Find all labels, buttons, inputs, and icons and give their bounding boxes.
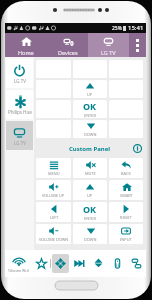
staticText: VOLUME DOWN xyxy=(39,237,69,242)
button[interactable]: Playback xyxy=(70,250,89,277)
staticText: Telecom Wi-fi xyxy=(8,268,30,273)
staticText: VOLUME UP xyxy=(42,193,65,198)
staticText: SMART xyxy=(120,193,133,198)
button[interactable]: Favourites xyxy=(32,250,50,277)
button[interactable]: LG TV xyxy=(6,59,33,88)
staticText: MENU xyxy=(48,171,60,176)
button[interactable]: MUTE xyxy=(73,158,107,178)
button[interactable]: UP xyxy=(73,80,107,98)
staticText: BACK xyxy=(121,171,131,176)
button[interactable]: Channel xyxy=(89,250,108,277)
staticText: Home xyxy=(18,49,34,56)
button[interactable]: LG TV xyxy=(6,121,33,150)
staticText: OK xyxy=(83,100,97,112)
staticText: Philips Hue xyxy=(8,109,32,115)
button[interactable]: OK xyxy=(73,100,107,118)
staticText: RIGHT xyxy=(120,215,132,220)
button[interactable]: UP xyxy=(73,180,107,200)
button[interactable]: LG TV xyxy=(88,33,129,57)
staticText: ENTER xyxy=(84,113,96,118)
staticText: 25% xyxy=(112,25,122,32)
staticText: DOWN xyxy=(84,237,97,242)
button[interactable]: SMART xyxy=(109,180,143,200)
staticText: LEFT xyxy=(50,215,59,220)
button[interactable]: Home xyxy=(5,33,47,57)
button[interactable]: LEFT xyxy=(36,202,71,222)
button[interactable]: Remote xyxy=(108,250,127,277)
staticText: UP xyxy=(87,92,93,97)
staticText: DOWN xyxy=(84,132,97,137)
button[interactable]: OK xyxy=(73,202,107,222)
staticText: MUTE xyxy=(85,171,96,176)
button[interactable]: Connect xyxy=(127,250,146,277)
staticText: Devices xyxy=(58,49,78,56)
button[interactable]: Telecom Wi-fi xyxy=(5,250,32,277)
staticText: OK xyxy=(83,203,97,215)
button[interactable]: VOLUME DOWN xyxy=(36,224,71,244)
staticText: LG TV xyxy=(14,78,26,84)
staticText: Custom Panel xyxy=(69,145,111,153)
staticText: LG TV xyxy=(14,140,26,146)
button[interactable]: Philips Hue xyxy=(6,90,33,119)
button[interactable]: Info xyxy=(131,142,143,154)
button[interactable]: Devices xyxy=(47,33,88,57)
staticText: LG TV xyxy=(101,49,116,56)
button[interactable]: MENU xyxy=(36,158,71,178)
button[interactable]: DOWN xyxy=(73,120,107,138)
button[interactable]: More options xyxy=(129,33,146,57)
button[interactable]: BACK xyxy=(109,158,143,178)
staticText: 15:41 xyxy=(128,24,144,32)
staticText: ENTER xyxy=(84,216,96,221)
button[interactable]: DOWN xyxy=(73,224,107,244)
button[interactable]: Navigation pad xyxy=(52,254,69,273)
staticText: INPUT xyxy=(120,237,132,242)
button[interactable]: VOLUME UP xyxy=(36,180,71,200)
button[interactable]: RIGHT xyxy=(109,202,143,222)
button[interactable]: INPUT xyxy=(109,224,143,244)
staticText: UP xyxy=(87,193,93,198)
